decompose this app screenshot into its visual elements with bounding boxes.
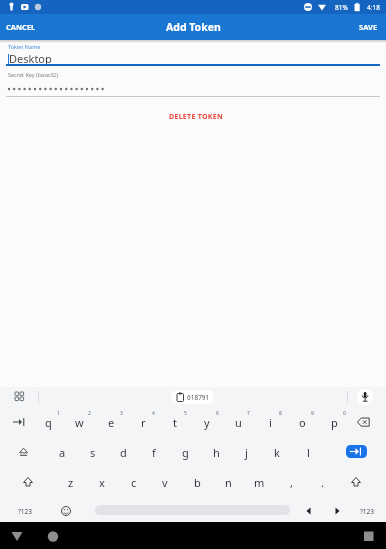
staticText: g <box>182 445 189 460</box>
button[interactable]: CANCEL <box>0 17 51 37</box>
staticText: d <box>120 445 127 460</box>
staticText: 5 <box>184 410 187 417</box>
staticText: 9 <box>311 410 314 417</box>
button[interactable]: a <box>48 441 76 463</box>
button[interactable] <box>358 526 380 546</box>
staticText: m <box>254 475 265 490</box>
button[interactable] <box>329 503 345 519</box>
staticText: y <box>204 415 210 430</box>
staticText: t <box>173 415 177 430</box>
staticText: h <box>213 445 220 460</box>
button[interactable] <box>10 388 38 406</box>
button[interactable]: DELETE TOKEN <box>141 107 251 127</box>
staticText: i <box>269 415 272 430</box>
button[interactable]: l <box>294 441 322 463</box>
button[interactable]: 618791 <box>171 390 214 404</box>
staticText: e <box>108 415 115 430</box>
button[interactable]: p <box>320 411 348 433</box>
button[interactable] <box>357 389 373 405</box>
button[interactable] <box>6 72 380 97</box>
button[interactable] <box>10 412 30 432</box>
staticText: , <box>290 475 293 490</box>
staticText: p <box>331 415 338 430</box>
staticText: Secret Key (base32) <box>8 71 58 78</box>
staticText: CANCEL <box>6 22 36 32</box>
staticText: 1 <box>57 410 60 417</box>
button[interactable] <box>300 503 316 519</box>
button[interactable]: r <box>129 411 157 433</box>
button[interactable]: . <box>308 471 336 493</box>
button[interactable]: , <box>277 471 305 493</box>
staticText: u <box>235 415 242 430</box>
staticText: f <box>152 445 156 460</box>
button[interactable]: m <box>245 471 273 493</box>
button[interactable]: x <box>88 471 116 493</box>
staticText: r <box>141 415 146 430</box>
button[interactable]: t <box>161 411 189 433</box>
button[interactable] <box>6 44 380 66</box>
staticText: Add Token <box>166 20 221 34</box>
staticText: 81% <box>335 3 348 12</box>
button[interactable]: i <box>256 411 284 433</box>
button[interactable] <box>42 526 64 546</box>
staticText: k <box>274 445 280 460</box>
button[interactable] <box>346 445 367 458</box>
staticText: v <box>162 475 168 490</box>
button[interactable]: b <box>183 471 211 493</box>
button[interactable]: e <box>97 411 125 433</box>
staticText: Token Name <box>8 43 41 50</box>
staticText: 8 <box>279 410 282 417</box>
staticText: l <box>307 445 310 460</box>
button[interactable]: ?123 <box>350 501 384 521</box>
staticText: w <box>75 415 84 430</box>
staticText: ?123 <box>18 507 32 516</box>
staticText: ?123 <box>360 507 374 516</box>
button[interactable]: o <box>288 411 316 433</box>
staticText: x <box>99 475 105 490</box>
button[interactable] <box>14 442 34 462</box>
button[interactable]: z <box>57 471 85 493</box>
staticText: 7 <box>247 410 250 417</box>
staticText: q <box>45 415 52 430</box>
staticText: 4:18 <box>367 3 380 12</box>
button[interactable] <box>346 472 366 492</box>
staticText: n <box>225 475 232 490</box>
staticText: o <box>299 415 306 430</box>
button[interactable]: k <box>263 441 291 463</box>
staticText: Desktop <box>9 51 52 66</box>
button[interactable] <box>354 412 374 432</box>
button[interactable]: h <box>202 441 230 463</box>
button[interactable]: w <box>65 411 93 433</box>
button[interactable]: ?123 <box>8 501 42 521</box>
button[interactable]: SAVE <box>343 17 386 37</box>
staticText: j <box>245 445 248 460</box>
button[interactable]: j <box>232 441 260 463</box>
staticText: s <box>90 445 96 460</box>
staticText: b <box>194 475 201 490</box>
staticText: 3 <box>120 410 123 417</box>
staticText: 6 <box>216 410 219 417</box>
button[interactable] <box>58 503 74 519</box>
staticText: DELETE TOKEN <box>169 112 223 122</box>
button[interactable]: v <box>151 471 179 493</box>
button[interactable]: d <box>109 441 137 463</box>
button[interactable]: q <box>34 411 62 433</box>
button[interactable]: f <box>140 441 168 463</box>
staticText: 2 <box>88 410 91 417</box>
button[interactable] <box>6 526 28 546</box>
staticText: . <box>321 475 324 490</box>
button[interactable]: y <box>193 411 221 433</box>
button[interactable]: c <box>120 471 148 493</box>
staticText: c <box>131 475 137 490</box>
staticText: a <box>59 445 66 460</box>
button[interactable]: u <box>224 411 252 433</box>
staticText: 4 <box>152 410 155 417</box>
staticText: 0 <box>343 410 346 417</box>
staticText: z <box>68 475 74 490</box>
button[interactable] <box>18 472 38 492</box>
button[interactable]: n <box>214 471 242 493</box>
button[interactable]: g <box>171 441 199 463</box>
button[interactable]: s <box>79 441 107 463</box>
staticText: SAVE <box>359 22 378 32</box>
